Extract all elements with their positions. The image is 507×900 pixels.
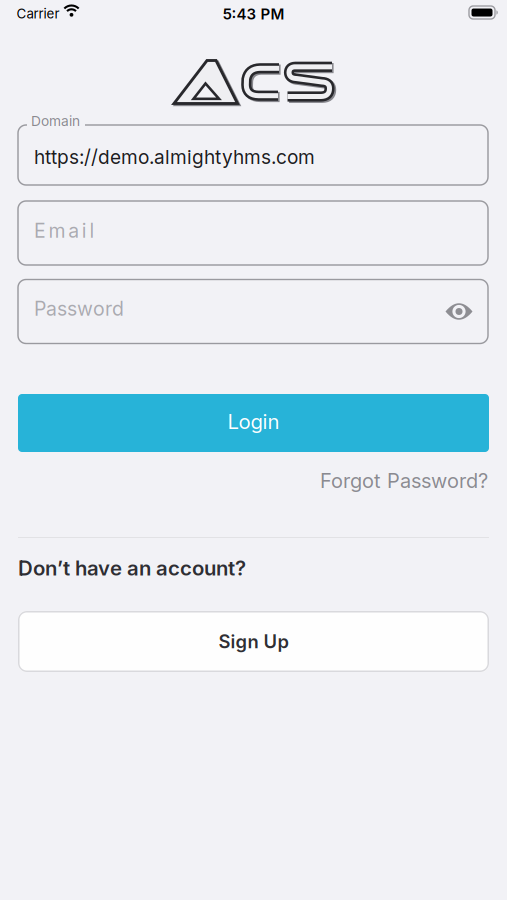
button[interactable]: Login [18, 394, 489, 452]
staticText: https://demo.almightyhms.com [34, 145, 315, 169]
button[interactable]: Sign Up [18, 611, 489, 672]
staticText: Email [34, 219, 94, 243]
staticText: Domain [31, 113, 80, 129]
button[interactable] [444, 301, 474, 322]
staticText: Login [227, 409, 279, 434]
staticText: Sign Up [218, 630, 288, 653]
button[interactable]: Email [18, 201, 488, 265]
staticText: Don’t have an account? [18, 556, 246, 580]
button[interactable]: Domain [18, 125, 488, 185]
staticText: Carrier [16, 5, 59, 22]
button[interactable]: Password [18, 279, 488, 343]
button[interactable]: Forgot Password? [320, 468, 488, 493]
staticText: 5:43 PM [222, 5, 284, 23]
staticText: Password [34, 297, 124, 321]
staticText: Forgot Password? [320, 468, 488, 493]
